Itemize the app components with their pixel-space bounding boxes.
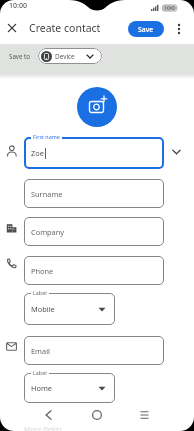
staticText: Email [31, 346, 50, 356]
button[interactable] [167, 143, 185, 161]
staticText: Create contact [29, 21, 101, 35]
button[interactable]: Phone [24, 256, 164, 285]
staticText: Save [138, 25, 154, 34]
staticText: Save to [9, 52, 31, 60]
button[interactable]: Device [38, 48, 102, 64]
staticText: First name [33, 133, 60, 140]
button[interactable]: Save [128, 21, 164, 37]
staticText: Zoe [31, 148, 44, 158]
staticText: Surname [31, 189, 63, 199]
staticText: Mobile [31, 304, 55, 314]
staticText: Device [55, 52, 75, 61]
button[interactable]: Home [24, 373, 115, 403]
staticText: Label [33, 369, 47, 376]
button[interactable] [38, 404, 58, 426]
button[interactable] [87, 404, 107, 426]
staticText: Phone [31, 266, 54, 276]
staticText: 10:00 [9, 1, 27, 11]
staticText: Label [33, 289, 47, 296]
button[interactable] [3, 19, 21, 37]
button[interactable] [171, 20, 187, 38]
staticText: More fields [24, 424, 62, 431]
button[interactable]: Mobile [24, 293, 115, 325]
staticText: Company [31, 227, 65, 237]
button[interactable]: Surname [24, 179, 164, 208]
button[interactable]: Zoe [24, 137, 164, 169]
button[interactable] [77, 87, 117, 127]
button[interactable]: Company [24, 217, 164, 246]
button[interactable] [134, 404, 154, 426]
button[interactable]: Email [24, 336, 164, 365]
staticText: Home [31, 383, 53, 393]
